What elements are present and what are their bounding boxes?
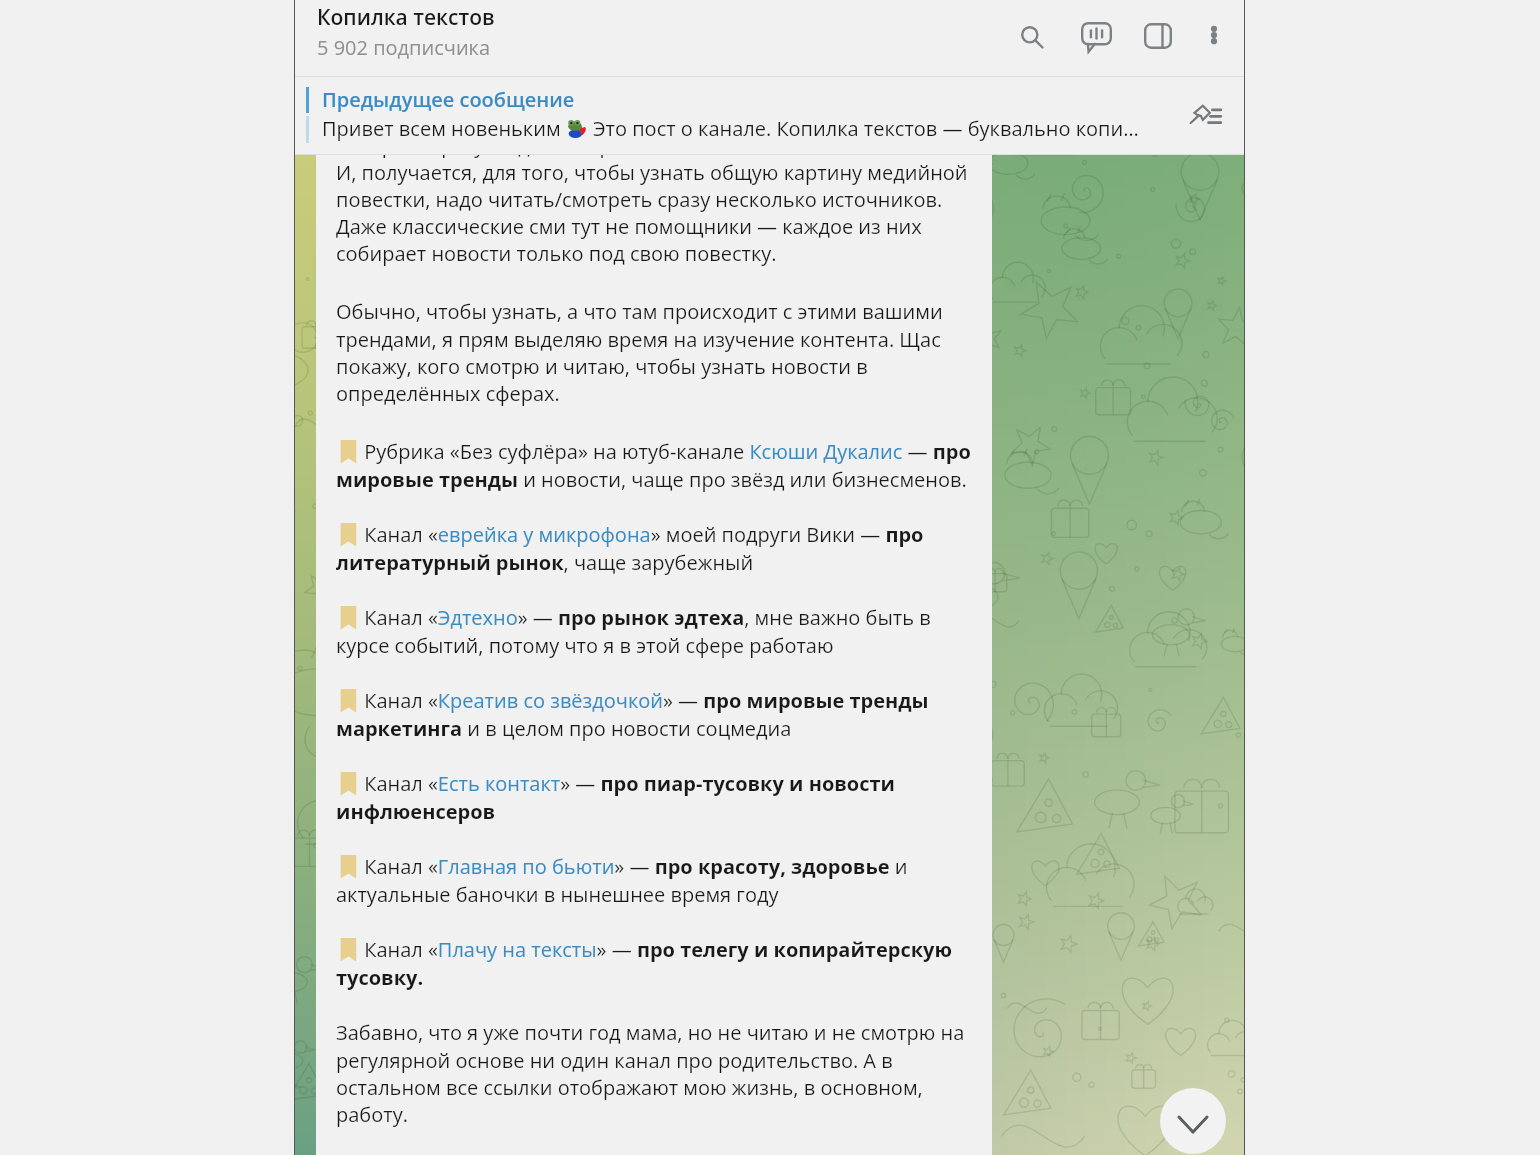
button[interactable]: Предыдущее сообщение [295, 77, 1244, 154]
staticText: Предыдущее сообщение [322, 86, 575, 113]
staticText: Обычно, чтобы узнать, а что там происход… [336, 298, 974, 406]
staticText: B Рубрика «Без суфлёра» на ютуб-канале К… [336, 438, 974, 492]
staticText: Привет всем новеньким F Это пост о канал… [322, 115, 1139, 142]
staticText: B Канал «Креатив со звёздочкой» — про ми… [336, 687, 974, 741]
staticText: B Канал «еврейка у микрофона» моей подру… [336, 521, 974, 575]
button[interactable]: Search [1012, 18, 1052, 58]
staticText: 5 902 подписчика [317, 34, 491, 61]
button[interactable]: Toggle info panel [1138, 18, 1178, 58]
button[interactable]: и теперь, чтобы понять, что вообще проис… [316, 155, 992, 1155]
button[interactable]: Live stream [1076, 18, 1116, 58]
staticText: B Канал «Эдтехно» — про рынок эдтеха, мн… [336, 604, 974, 658]
button[interactable]: Pinned messages [1180, 90, 1232, 142]
staticText: Забавно, что я уже почти год мама, но не… [336, 1019, 974, 1127]
staticText: и теперь, чтобы понять, что вообще проис… [336, 155, 974, 266]
staticText: B Канал «Есть контакт» — про пиар-тусовк… [336, 770, 974, 824]
button[interactable]: More options [1194, 18, 1234, 58]
staticText: Копилка текстов [317, 3, 495, 32]
button[interactable]: Scroll to bottom [1160, 1088, 1226, 1154]
staticText: B Канал «Главная по бьюти» — про красоту… [336, 853, 974, 907]
staticText: B Канал «Плачу на тексты» — про телегу и… [336, 936, 974, 990]
